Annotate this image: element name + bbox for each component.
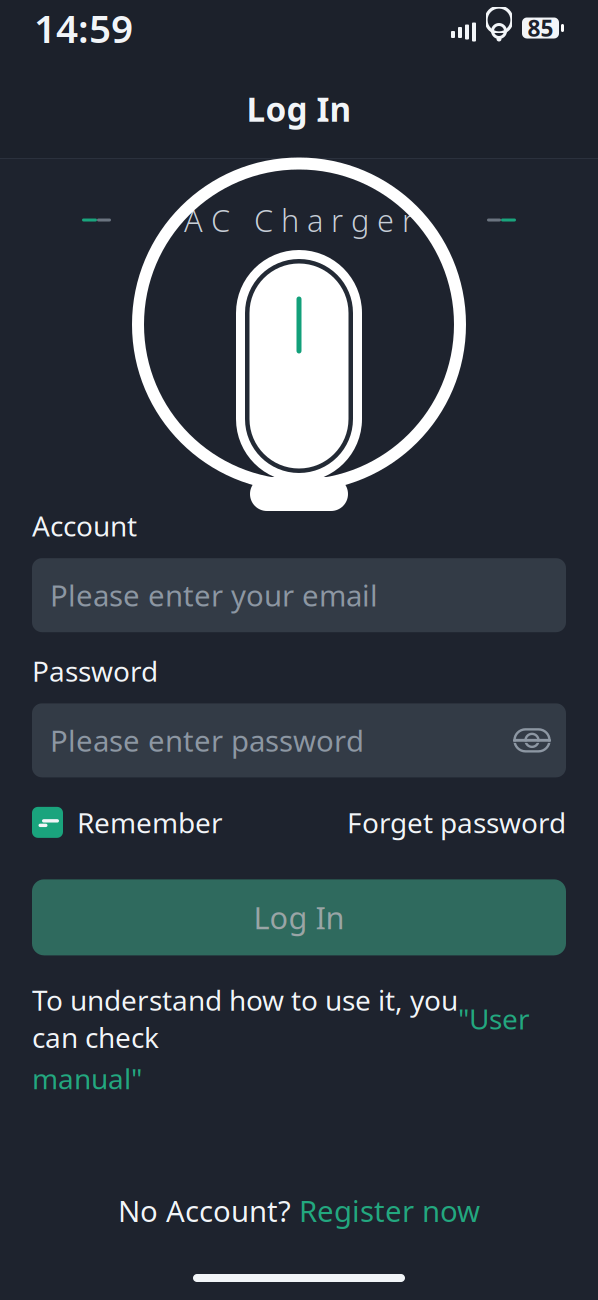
staticText: "User: [458, 1000, 530, 1037]
button[interactable]: No Account?: [118, 1191, 480, 1230]
button[interactable]: manual": [32, 1060, 142, 1097]
button[interactable]: Log In: [32, 879, 566, 955]
staticText: Register now: [299, 1191, 480, 1230]
staticText: 14:59: [34, 2, 133, 54]
staticText: Log In: [246, 87, 351, 131]
staticText: Forget password: [347, 804, 566, 841]
staticText: manual": [32, 1060, 142, 1097]
button[interactable]: Show password: [508, 716, 556, 764]
staticText: Password: [32, 652, 158, 689]
button[interactable]: "User: [458, 1000, 530, 1037]
button[interactable]: Remember: [32, 804, 223, 841]
staticText: 85: [527, 13, 553, 43]
button[interactable]: Forget password: [347, 804, 566, 841]
staticText: Log In: [253, 897, 344, 938]
staticText: To understand how to use it, you can che…: [32, 981, 458, 1056]
staticText: Remember: [77, 804, 223, 841]
staticText: Please enter password: [50, 721, 364, 760]
staticText: Account: [32, 507, 137, 544]
staticText: Please enter your email: [50, 576, 378, 615]
staticText: A C C h a r g e r: [184, 200, 414, 240]
staticText: No Account?: [118, 1191, 299, 1230]
